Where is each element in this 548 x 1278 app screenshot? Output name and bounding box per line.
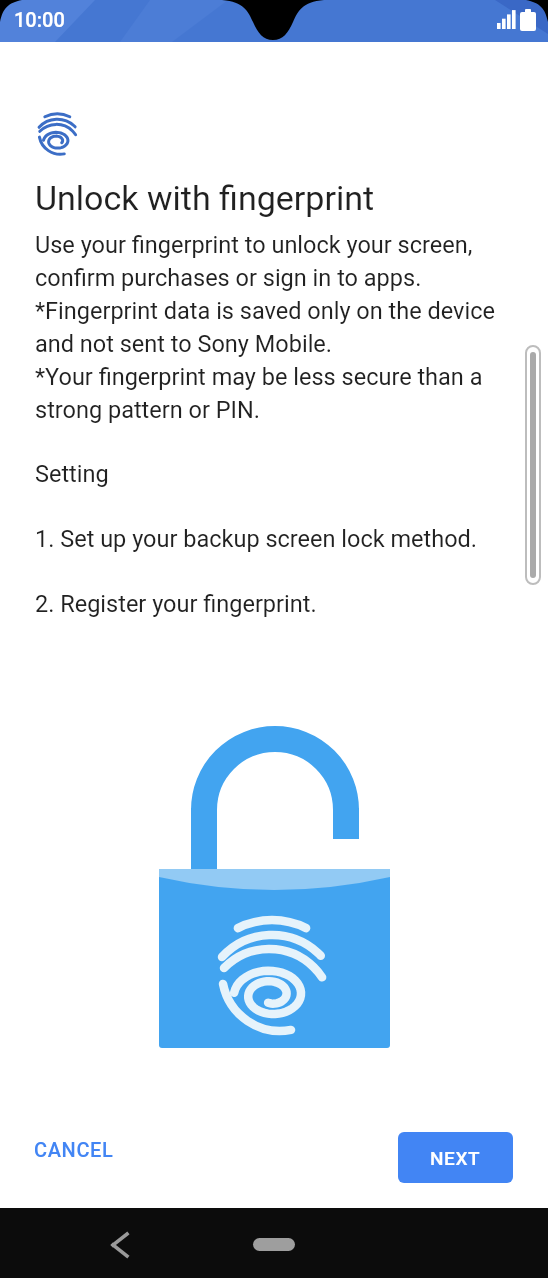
staticText: Unlock with fingerprint <box>35 178 375 218</box>
staticText: Setting <box>35 460 109 488</box>
staticText: 1. Set up your backup screen lock method… <box>35 525 478 553</box>
button[interactable] <box>90 1214 150 1272</box>
button[interactable]: CANCEL <box>18 1124 130 1174</box>
button[interactable]: NEXT <box>398 1132 513 1183</box>
staticText: CANCEL <box>34 1138 114 1161</box>
staticText: Use your fingerprint to unlock your scre… <box>35 231 495 424</box>
staticText: 2. Register your fingerprint. <box>35 590 317 618</box>
staticText: 10:00 <box>14 8 65 31</box>
button[interactable] <box>243 1214 305 1272</box>
staticText: NEXT <box>430 1147 481 1169</box>
